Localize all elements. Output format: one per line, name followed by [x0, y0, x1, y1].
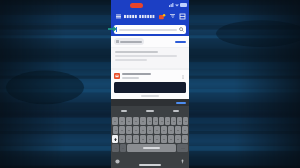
- other: Search: [179, 27, 184, 32]
- button[interactable]: [133, 135, 139, 143]
- button[interactable]: [133, 126, 139, 134]
- button[interactable]: Space: [127, 144, 176, 152]
- button[interactable]: Shift: [112, 135, 118, 143]
- button[interactable]: [154, 135, 160, 143]
- button[interactable]: [147, 135, 153, 143]
- button[interactable]: [140, 135, 146, 143]
- button[interactable]: More: [111, 70, 189, 99]
- button[interactable]: Symbols: [112, 144, 119, 152]
- button[interactable]: Enter: [177, 144, 188, 152]
- button[interactable]: Menu: [114, 12, 122, 20]
- button[interactable]: [175, 126, 181, 134]
- button[interactable]: [119, 135, 125, 143]
- button[interactable]: [161, 135, 167, 143]
- button[interactable]: Backspace: [182, 135, 188, 143]
- other: Voice input: [180, 159, 185, 164]
- button[interactable]: [126, 135, 132, 143]
- button[interactable]: Search: [114, 25, 186, 34]
- button[interactable]: [182, 126, 188, 134]
- button[interactable]: Emoji: [120, 144, 126, 152]
- button[interactable]: [140, 126, 146, 134]
- button[interactable]: [171, 117, 176, 125]
- button[interactable]: [147, 126, 153, 134]
- button[interactable]: [175, 135, 181, 143]
- button[interactable]: [168, 126, 174, 134]
- button[interactable]: More options: [178, 12, 186, 20]
- button[interactable]: [126, 126, 132, 134]
- button[interactable]: [137, 106, 163, 115]
- button[interactable]: [114, 82, 186, 93]
- button[interactable]: [111, 48, 189, 68]
- button[interactable]: [119, 126, 125, 134]
- button[interactable]: Sort: [168, 12, 176, 20]
- button[interactable]: [133, 117, 139, 125]
- button[interactable]: [161, 126, 167, 134]
- button[interactable]: [183, 117, 188, 125]
- button[interactable]: More: [179, 73, 186, 80]
- other: Language: [115, 159, 120, 164]
- button[interactable]: [154, 126, 160, 134]
- button[interactable]: [177, 117, 182, 125]
- button[interactable]: [168, 135, 174, 143]
- button[interactable]: [113, 126, 118, 134]
- button[interactable]: [175, 38, 186, 45]
- button[interactable]: [176, 102, 186, 104]
- button[interactable]: [114, 38, 144, 45]
- button[interactable]: [163, 106, 189, 115]
- button[interactable]: [147, 117, 152, 125]
- button[interactable]: [153, 117, 158, 125]
- button[interactable]: [119, 117, 125, 125]
- button[interactable]: [111, 106, 137, 115]
- button[interactable]: [165, 117, 170, 125]
- button[interactable]: Notifications: [157, 12, 166, 21]
- button[interactable]: [126, 117, 132, 125]
- button[interactable]: [159, 117, 164, 125]
- button[interactable]: [140, 117, 146, 125]
- button[interactable]: [112, 117, 118, 125]
